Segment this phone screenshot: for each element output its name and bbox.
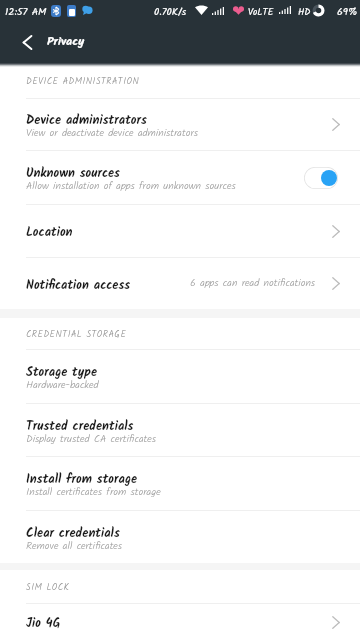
staticText: VoLTE xyxy=(248,5,274,20)
button[interactable]: Toggle unknown sources xyxy=(304,167,338,189)
staticText: 0.70K/s xyxy=(154,4,187,21)
staticText: 6 apps can read notifications xyxy=(190,275,316,292)
staticText: Install certificates from storage xyxy=(26,484,161,501)
staticText: SIM LOCK xyxy=(26,580,70,594)
staticText: View or deactivate device administrators xyxy=(26,125,198,142)
button[interactable]: Unknown sources xyxy=(0,151,360,204)
staticText: Storage type xyxy=(26,363,98,383)
button[interactable]: Jio 4G xyxy=(0,604,360,640)
staticText: Remove all certificates xyxy=(26,538,123,555)
button[interactable]: Storage type xyxy=(0,350,360,403)
staticText: Install from storage xyxy=(26,470,138,490)
staticText: Jio 4G xyxy=(26,614,61,630)
button[interactable]: Clear credentials xyxy=(0,511,360,563)
staticText: DEVICE ADMINISTRATION xyxy=(26,74,140,88)
staticText: Clear credentials xyxy=(26,524,120,544)
staticText: Allow installation of apps from unknown … xyxy=(26,178,236,195)
button[interactable]: Install from storage xyxy=(0,457,360,510)
staticText: Location xyxy=(26,223,73,239)
staticText: Device administrators xyxy=(26,111,147,131)
staticText: Unknown sources xyxy=(26,164,120,184)
staticText: Hardware-backed xyxy=(26,377,99,394)
button[interactable]: Device administrators xyxy=(0,99,360,150)
staticText: CREDENTIAL STORAGE xyxy=(26,327,127,341)
staticText: Trusted credentials xyxy=(26,417,134,437)
button[interactable]: Trusted credentials xyxy=(0,404,360,456)
staticText: Notification access xyxy=(26,276,131,292)
staticText: Display trusted CA certificates xyxy=(26,431,157,448)
button[interactable]: Location xyxy=(0,205,360,257)
staticText: Privacy xyxy=(47,32,85,51)
staticText: 12:57 AM xyxy=(5,4,47,21)
button[interactable]: Notification access xyxy=(0,258,360,309)
button[interactable]: Back xyxy=(5,20,49,64)
staticText: HD xyxy=(298,5,311,20)
staticText: 69% xyxy=(337,4,358,21)
